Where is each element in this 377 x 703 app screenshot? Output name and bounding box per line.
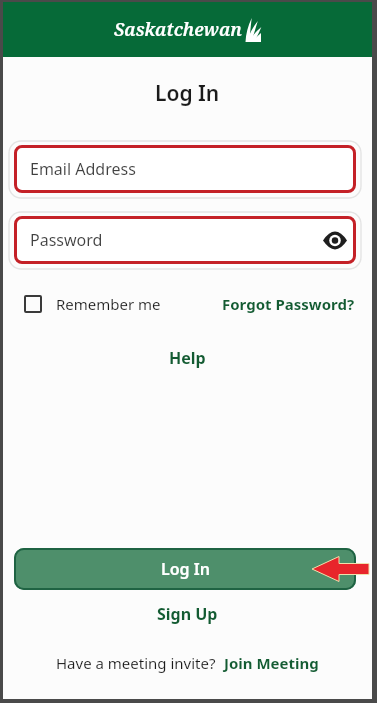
button[interactable]: Email Address	[14, 145, 356, 193]
staticText: Help	[169, 347, 206, 369]
staticText: Forgot Password?	[222, 294, 355, 314]
button[interactable]: Join Meeting	[224, 653, 319, 673]
button[interactable]: Log In	[14, 548, 356, 590]
staticText: Join Meeting	[224, 653, 319, 673]
staticText: Remember me	[56, 294, 161, 314]
staticText: Sign Up	[157, 603, 218, 625]
staticText: Have a meeting invite?	[56, 653, 216, 673]
staticText: Log In	[155, 79, 220, 108]
staticText: Log In	[161, 558, 210, 580]
button[interactable]: Help	[169, 347, 206, 369]
staticText: Email Address	[30, 158, 136, 180]
button[interactable]: Forgot Password?	[222, 294, 355, 314]
button[interactable]: Sign Up	[157, 603, 218, 625]
staticText: Saskatchewan	[114, 17, 242, 42]
button[interactable]: Password	[14, 216, 356, 264]
button[interactable]: Remember me	[24, 294, 161, 314]
staticText: Password	[30, 229, 103, 251]
